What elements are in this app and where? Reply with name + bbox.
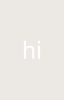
- staticText: hi: [22, 35, 42, 65]
